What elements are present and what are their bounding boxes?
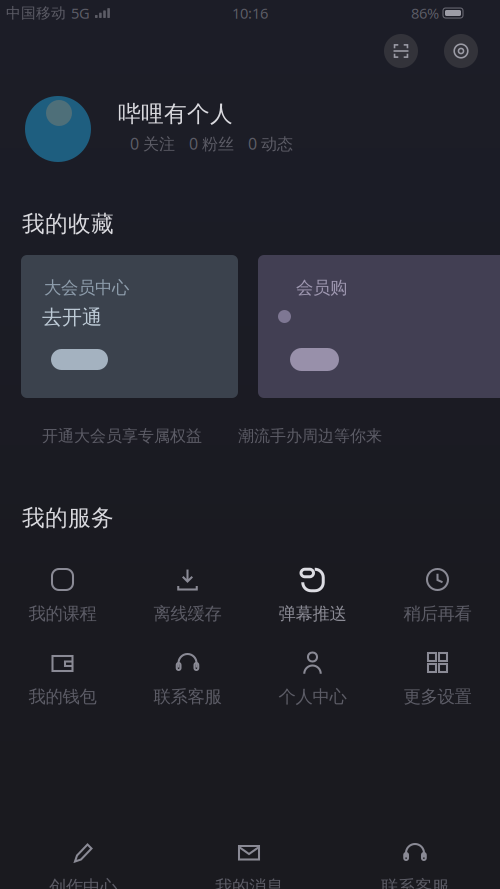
button[interactable]: 我的消息 xyxy=(166,840,332,889)
staticText: 我的钱包 xyxy=(28,686,96,707)
button[interactable]: 联系客服 xyxy=(125,650,250,733)
staticText: 我的消息 xyxy=(215,876,283,889)
staticText: 离线缓存 xyxy=(153,603,221,624)
staticText: 10:16 xyxy=(232,3,268,23)
button[interactable]: 离线缓存 xyxy=(125,567,250,650)
staticText: 我的课程 xyxy=(28,603,96,624)
button[interactable]: 我的课程 xyxy=(0,567,125,650)
staticText: 0 动态 xyxy=(248,133,293,154)
staticText: 去开通 xyxy=(42,305,102,330)
button[interactable]: 个人中心 xyxy=(250,650,375,733)
staticText: 联系客服 xyxy=(381,876,449,889)
button[interactable]: 更多设置 xyxy=(375,650,500,733)
button[interactable]: 稍后再看 xyxy=(375,567,500,650)
staticText: 弹幕推送 xyxy=(278,603,346,624)
staticText: 稍后再看 xyxy=(403,603,471,624)
staticText: 我的收藏 xyxy=(22,210,114,238)
button[interactable]: 会员购 xyxy=(258,255,500,398)
button[interactable]: 哔哩有个人 xyxy=(0,96,500,162)
button[interactable]: 联系客服 xyxy=(332,840,498,889)
staticText: 会员购 xyxy=(296,277,347,298)
button[interactable]: 创作中心 xyxy=(0,840,166,889)
button[interactable]: Settings xyxy=(442,32,480,70)
staticText: 更多设置 xyxy=(403,686,471,707)
button[interactable]: 弹幕推送 xyxy=(250,567,375,650)
staticText: 0 粉丝 xyxy=(189,133,234,154)
staticText: 大会员中心 xyxy=(44,277,129,298)
staticText: 创作中心 xyxy=(49,876,117,889)
staticText: 我的服务 xyxy=(22,504,114,532)
staticText: 0 关注 xyxy=(130,133,175,154)
staticText: 86% xyxy=(411,3,439,23)
staticText: 哔哩有个人 xyxy=(118,100,233,128)
staticText: 5G xyxy=(71,3,90,23)
staticText: 中国移动 xyxy=(6,4,66,22)
button[interactable]: 我的钱包 xyxy=(0,650,125,733)
staticText: 潮流手办周边等你来 xyxy=(238,426,382,446)
staticText: 开通大会员享专属权益 xyxy=(42,426,202,446)
button[interactable]: 大会员中心 xyxy=(21,255,238,398)
staticText: 联系客服 xyxy=(153,686,221,707)
staticText: 个人中心 xyxy=(278,686,346,707)
button[interactable]: Scan QR code xyxy=(382,32,420,70)
